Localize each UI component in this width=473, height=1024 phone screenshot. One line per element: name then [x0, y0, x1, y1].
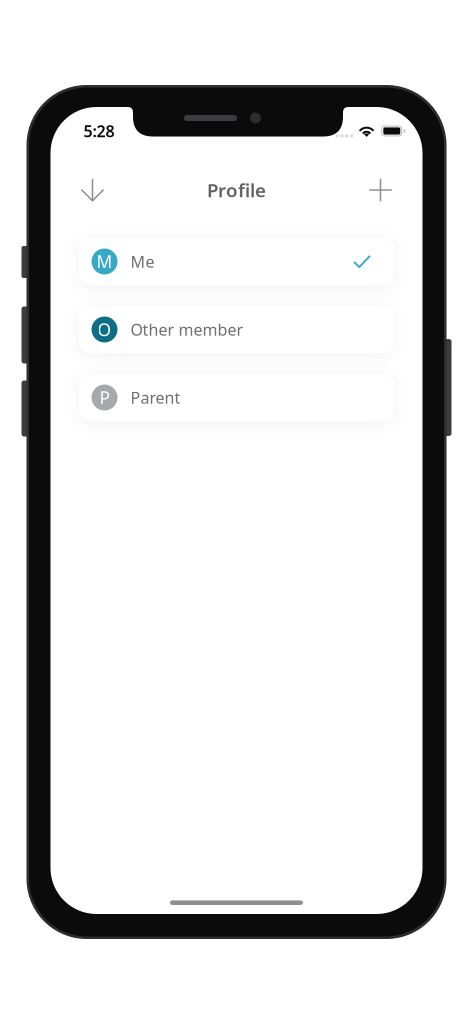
- staticText: M: [96, 250, 112, 273]
- staticText: Other member: [130, 319, 243, 340]
- staticText: P: [99, 386, 109, 409]
- button[interactable]: P: [72, 367, 400, 428]
- staticText: O: [97, 318, 111, 341]
- staticText: Profile: [207, 178, 266, 202]
- staticText: Me: [130, 251, 154, 272]
- staticText: 5:28: [83, 120, 114, 142]
- button[interactable]: Download: [70, 168, 114, 212]
- button[interactable]: M: [72, 231, 400, 292]
- staticText: Parent: [130, 387, 180, 408]
- button[interactable]: Add: [358, 168, 402, 212]
- button[interactable]: O: [72, 299, 400, 360]
